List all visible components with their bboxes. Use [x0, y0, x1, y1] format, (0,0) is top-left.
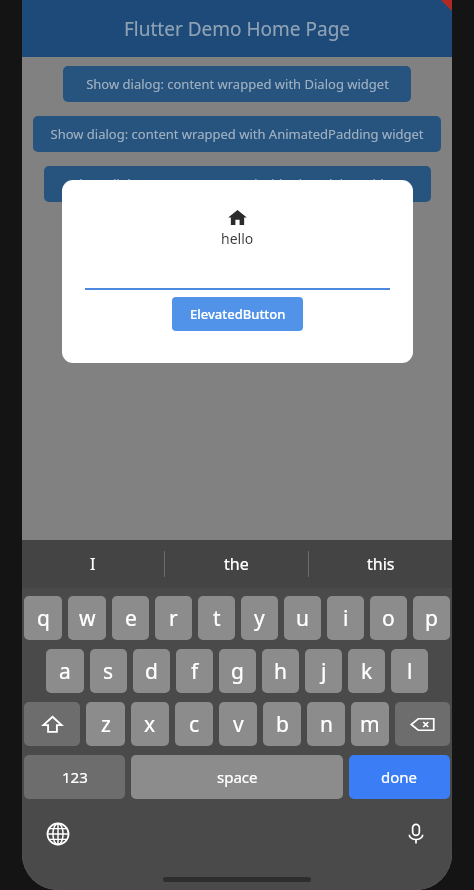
button[interactable]: 123 [24, 755, 125, 799]
staticText: u [296, 604, 309, 633]
button[interactable]: Show dialog: content wrapped with AlertD… [44, 166, 431, 202]
button[interactable]: h [262, 649, 299, 693]
button[interactable]: done [349, 755, 450, 799]
staticText: 123 [62, 767, 88, 787]
button[interactable]: z [86, 702, 125, 746]
staticText: x [144, 710, 156, 739]
staticText: f [191, 657, 199, 686]
staticText: w [79, 604, 96, 633]
button[interactable]: Show dialog: content wrapped with Dialog… [63, 66, 411, 102]
staticText: l [407, 657, 413, 686]
staticText: y [254, 604, 265, 633]
staticText: d [145, 657, 158, 686]
staticText: c [189, 710, 200, 739]
button[interactable]: this [309, 540, 452, 588]
button[interactable]: y [241, 596, 278, 640]
staticText: q [37, 604, 50, 633]
staticText: I [90, 553, 96, 575]
staticText: Flutter Demo Home Page [124, 16, 351, 42]
button[interactable]: m [351, 702, 389, 746]
button[interactable]: k [348, 649, 385, 693]
button[interactable]: x [131, 702, 169, 746]
button[interactable]: d [133, 649, 170, 693]
staticText: z [101, 710, 111, 739]
button[interactable]: r [155, 596, 192, 640]
button[interactable]: f [176, 649, 213, 693]
button[interactable]: the [165, 540, 308, 588]
staticText: h [274, 657, 287, 686]
staticText: s [103, 657, 114, 686]
button[interactable]: p [413, 596, 450, 640]
button[interactable]: u [284, 596, 321, 640]
button[interactable]: q [24, 596, 62, 640]
button[interactable]: j [305, 649, 342, 693]
staticText: i [343, 604, 349, 633]
staticText: j [321, 657, 327, 686]
button[interactable]: b [263, 702, 301, 746]
staticText: Show dialog: content wrapped with AlertD… [72, 175, 404, 193]
button[interactable]: c [175, 702, 213, 746]
button[interactable]: Voice input [398, 816, 434, 852]
staticText: o [382, 604, 395, 633]
staticText: ElevatedButton [190, 305, 286, 323]
button[interactable]: n [307, 702, 345, 746]
button[interactable]: w [68, 596, 106, 640]
staticText: m [360, 710, 380, 739]
button[interactable]: Show dialog: content wrapped with Animat… [33, 116, 441, 152]
button[interactable]: Backspace [395, 702, 450, 746]
button[interactable]: Change keyboard [40, 816, 76, 852]
button[interactable]: l [391, 649, 428, 693]
staticText: v [233, 710, 244, 739]
button[interactable]: t [198, 596, 235, 640]
button[interactable]: e [112, 596, 149, 640]
staticText: b [276, 710, 289, 739]
staticText: t [213, 604, 221, 633]
staticText: the [224, 553, 249, 575]
staticText: this [367, 553, 395, 575]
button[interactable]: Shift [24, 702, 80, 746]
staticText: r [169, 604, 178, 633]
staticText: g [231, 657, 244, 686]
staticText: p [425, 604, 438, 633]
staticText: e [125, 604, 137, 633]
button[interactable]: a [46, 649, 84, 693]
staticText: Show dialog: content wrapped with Animat… [50, 125, 424, 143]
button[interactable]: g [219, 649, 256, 693]
button[interactable]: ElevatedButton [172, 297, 303, 331]
button[interactable]: v [219, 702, 257, 746]
button[interactable]: space [131, 755, 343, 799]
staticText: space [217, 767, 258, 787]
button[interactable]: o [370, 596, 407, 640]
staticText: k [361, 657, 373, 686]
button[interactable]: i [327, 596, 364, 640]
button[interactable]: s [90, 649, 127, 693]
staticText: a [59, 657, 71, 686]
staticText: Show dialog: content wrapped with Dialog… [86, 75, 389, 93]
staticText: hello [221, 229, 254, 248]
button[interactable]: I [22, 540, 164, 588]
staticText: n [320, 710, 333, 739]
staticText: done [381, 767, 418, 787]
